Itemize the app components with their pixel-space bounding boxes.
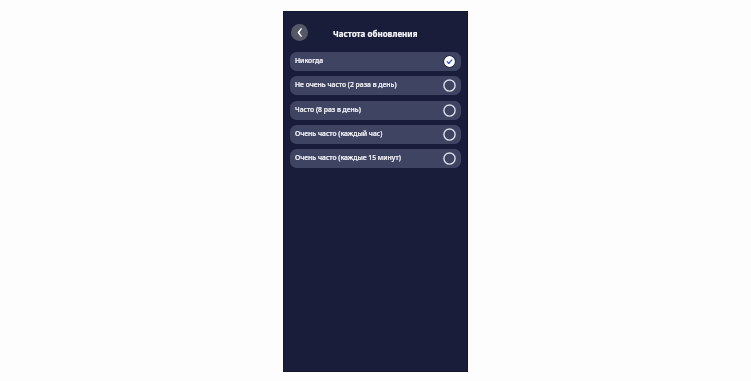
button[interactable]: Часто (8 раз в день) xyxy=(290,101,461,120)
button[interactable]: Очень часто (каждый час) xyxy=(290,125,461,144)
button[interactable]: Back xyxy=(291,24,308,41)
staticText: Очень часто (каждый час) xyxy=(295,129,443,138)
button[interactable]: Никогда xyxy=(290,52,461,71)
staticText: Частота обновления xyxy=(333,28,418,39)
button[interactable]: Не очень часто (2 раза в день) xyxy=(290,76,461,95)
staticText: Часто (8 раз в день) xyxy=(295,105,443,114)
staticText: Не очень часто (2 раза в день) xyxy=(295,80,443,89)
staticText: Очень часто (каждые 15 минут) xyxy=(295,153,443,162)
staticText: Никогда xyxy=(295,56,443,65)
button[interactable]: Очень часто (каждые 15 минут) xyxy=(290,149,461,168)
